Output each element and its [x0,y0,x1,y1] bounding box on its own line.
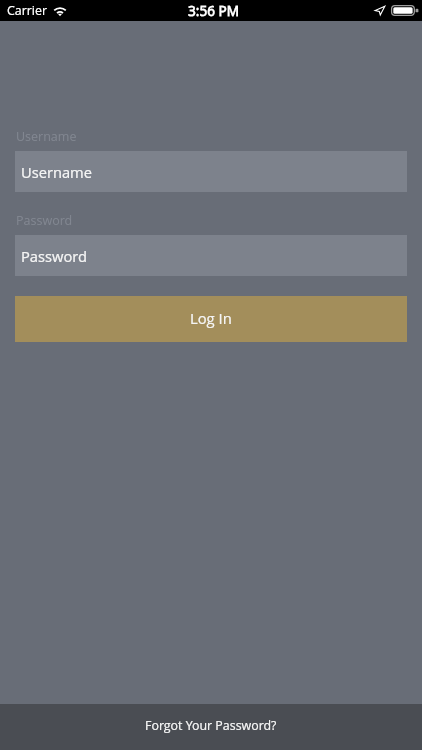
staticText: Log In [190,308,232,328]
other: Battery full [391,5,419,16]
staticText: Username [21,162,93,182]
staticText: Password [16,212,73,229]
staticText: Username [16,128,77,145]
button[interactable]: Forgot Your Password? [0,704,422,750]
staticText: 3:56 PM [188,1,239,20]
staticText: Carrier [7,2,47,19]
other: Location services active [375,6,385,15]
button[interactable]: Log In [15,296,407,342]
staticText: Forgot Your Password? [145,717,277,734]
staticText: Password [21,246,88,266]
button[interactable]: Username [15,151,407,192]
other: Wi-Fi signal [53,6,67,16]
button[interactable]: Password [15,235,407,276]
